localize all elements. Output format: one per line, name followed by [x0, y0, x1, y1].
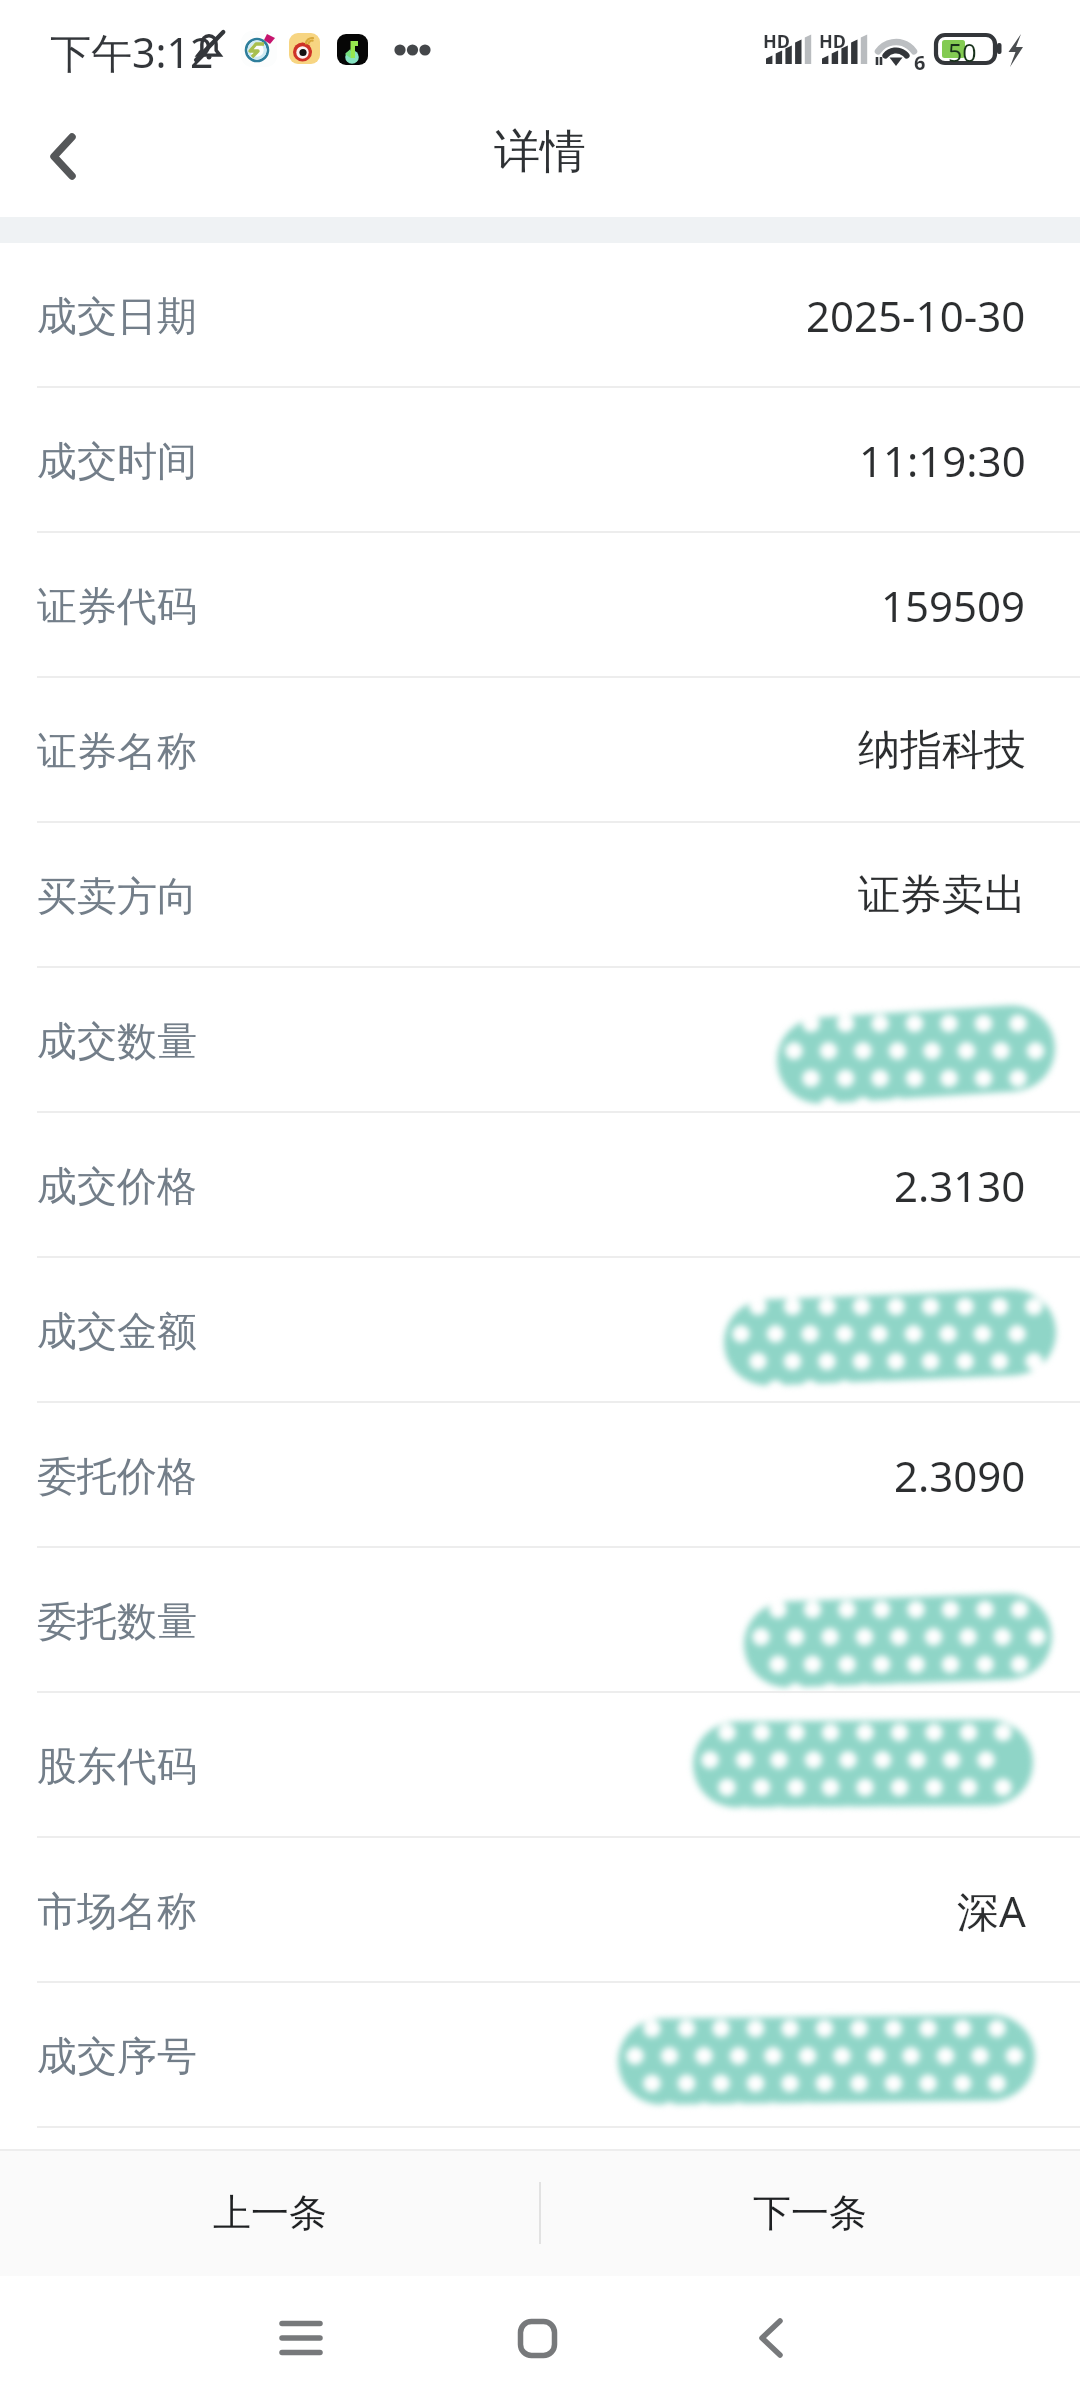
- button[interactable]: 下一条: [540, 2149, 1080, 2276]
- staticText: 2.3090: [894, 1447, 1026, 1504]
- button[interactable]: 主屏幕: [477, 2278, 597, 2398]
- staticText: 成交序号: [37, 2031, 197, 2081]
- staticText: 成交价格: [37, 1161, 197, 1211]
- staticText: HD: [819, 29, 846, 54]
- button[interactable]: 最近任务: [241, 2278, 361, 2398]
- staticText: 11:19:30: [859, 432, 1026, 489]
- staticText: 50: [948, 35, 977, 69]
- staticText: 下午3:12: [50, 24, 214, 80]
- staticText: 成交日期: [37, 291, 197, 341]
- staticText: 成交时间: [37, 436, 197, 486]
- staticText: 成交金额: [37, 1306, 197, 1356]
- button[interactable]: 成交日期: [0, 243, 1080, 388]
- button[interactable]: 成交金额: [0, 1258, 1080, 1403]
- button[interactable]: 成交价格: [0, 1113, 1080, 1258]
- button[interactable]: 委托数量: [0, 1548, 1080, 1693]
- staticText: 下一条: [753, 2189, 867, 2237]
- staticText: 详情: [494, 123, 586, 181]
- button[interactable]: 买卖方向: [0, 823, 1080, 968]
- staticText: 上一条: [213, 2189, 327, 2237]
- staticText: 股东代码: [37, 1741, 197, 1791]
- staticText: 证券代码: [37, 581, 197, 631]
- staticText: 6: [914, 49, 926, 76]
- button[interactable]: 成交数量: [0, 968, 1080, 1113]
- staticText: 买卖方向: [37, 871, 197, 921]
- button[interactable]: 证券代码: [0, 533, 1080, 678]
- staticText: 2.3130: [894, 1157, 1026, 1214]
- button[interactable]: 返回: [0, 95, 120, 217]
- staticText: 2025-10-30: [806, 287, 1026, 344]
- staticText: 成交数量: [37, 1016, 197, 1066]
- staticText: 159509: [881, 577, 1026, 634]
- staticText: 深A: [957, 1882, 1026, 1939]
- button[interactable]: 市场名称: [0, 1838, 1080, 1983]
- staticText: HD: [763, 29, 790, 54]
- button[interactable]: 成交时间: [0, 388, 1080, 533]
- button[interactable]: 证券名称: [0, 678, 1080, 823]
- button[interactable]: 上一条: [0, 2149, 540, 2276]
- button[interactable]: 成交序号: [0, 1983, 1080, 2128]
- button[interactable]: 股东代码: [0, 1693, 1080, 1838]
- button[interactable]: 委托价格: [0, 1403, 1080, 1548]
- staticText: 委托价格: [37, 1451, 197, 1501]
- staticText: 证券名称: [37, 726, 197, 776]
- staticText: 证券卖出: [858, 869, 1026, 922]
- staticText: 委托数量: [37, 1596, 197, 1646]
- staticText: 市场名称: [37, 1886, 197, 1936]
- button[interactable]: 返回: [711, 2278, 831, 2398]
- staticText: 纳指科技: [858, 724, 1026, 777]
